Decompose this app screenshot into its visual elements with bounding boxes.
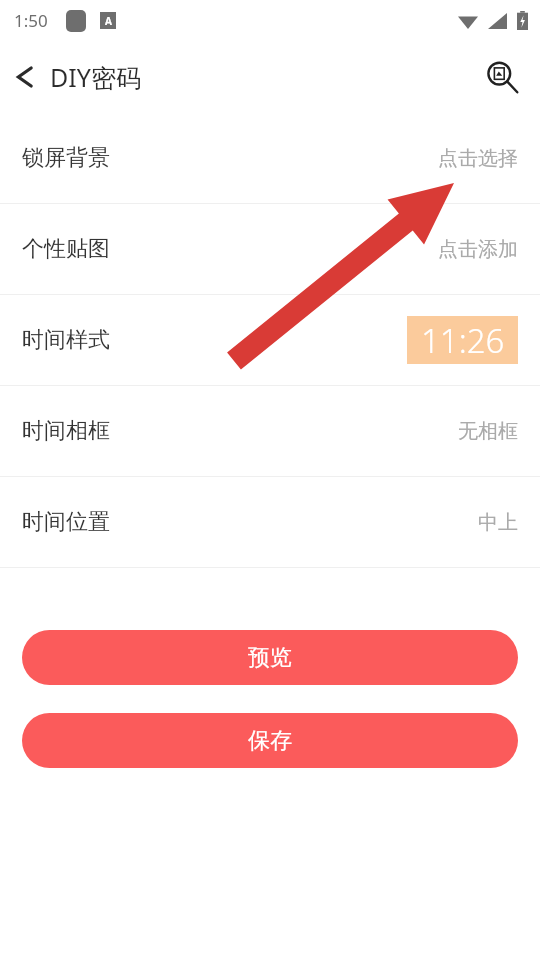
staticText: A xyxy=(105,14,112,28)
staticText: 时间相框 xyxy=(22,417,110,445)
staticText: 时间样式 xyxy=(22,326,110,354)
button[interactable]: 时间样式 xyxy=(0,295,540,385)
button[interactable]: 个性贴图 xyxy=(0,204,540,294)
staticText: 时间位置 xyxy=(22,508,110,536)
staticText: DIY密码 xyxy=(50,60,141,94)
staticText: 无相框 xyxy=(458,419,518,444)
staticText: 11:26 xyxy=(421,318,505,363)
staticText: 1:50 xyxy=(14,9,48,32)
staticText: 锁屏背景 xyxy=(22,144,110,172)
button[interactable]: 时间相框 xyxy=(0,386,540,476)
staticText: 预览 xyxy=(248,644,292,672)
button[interactable]: 保存 xyxy=(22,713,518,768)
button[interactable]: 时间位置 xyxy=(0,477,540,567)
staticText: 点击添加 xyxy=(438,237,518,262)
staticText: 中上 xyxy=(478,510,518,535)
other: Back xyxy=(14,63,36,91)
staticText: 保存 xyxy=(248,727,292,755)
button[interactable]: Search image xyxy=(476,51,528,103)
button[interactable]: 预览 xyxy=(22,630,518,685)
button[interactable]: Back xyxy=(0,52,151,102)
button[interactable]: 锁屏背景 xyxy=(0,113,540,203)
staticText: 个性贴图 xyxy=(22,235,110,263)
staticText: 点击选择 xyxy=(438,146,518,171)
